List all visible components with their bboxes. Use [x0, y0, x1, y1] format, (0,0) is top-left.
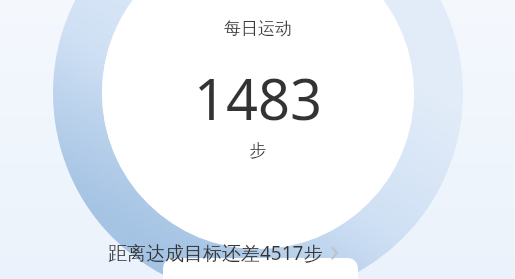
staticText: 距离达成目标还差4517步 — [108, 240, 323, 266]
button[interactable]: 每日运动 — [158, 18, 358, 279]
staticText: 步 — [158, 140, 358, 279]
button[interactable] — [163, 258, 358, 279]
other: 查看详情 — [323, 240, 349, 266]
staticText: 每日运动 — [158, 18, 358, 279]
staticText: 1483 — [158, 60, 358, 279]
button[interactable]: 距离达成目标还差4517步 — [108, 238, 404, 268]
